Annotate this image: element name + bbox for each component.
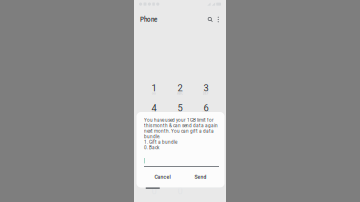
staticText: 1 bbox=[151, 82, 156, 93]
button[interactable]: More options bbox=[213, 12, 223, 26]
staticText: Cancel bbox=[154, 174, 170, 180]
button[interactable]: 1 bbox=[141, 79, 167, 99]
staticText: You have used your 1GB limit for bbox=[144, 117, 214, 123]
staticText: Send bbox=[194, 174, 206, 180]
staticText: 9 bbox=[203, 122, 208, 133]
staticText: 6 bbox=[203, 102, 208, 113]
staticText: next month. You can gift a data bbox=[144, 128, 214, 134]
staticText: 3 bbox=[203, 82, 208, 93]
staticText: 4 bbox=[151, 102, 156, 113]
button[interactable]: Search bbox=[207, 12, 213, 26]
button[interactable]: 3 bbox=[193, 79, 219, 99]
staticText: ABC bbox=[177, 92, 183, 95]
button[interactable]: 6 bbox=[193, 99, 219, 119]
staticText: 8 bbox=[177, 122, 182, 133]
staticText: this month & can send data again bbox=[144, 123, 218, 128]
staticText: * bbox=[152, 142, 156, 153]
staticText: PQRS bbox=[150, 132, 158, 135]
button[interactable]: Cancel bbox=[145, 171, 179, 183]
staticText: 0. Back bbox=[144, 145, 159, 150]
staticText: TUV bbox=[177, 132, 183, 135]
staticText: Phone bbox=[140, 16, 157, 23]
staticText: oo bbox=[152, 92, 156, 95]
button[interactable]: Send bbox=[186, 171, 214, 183]
staticText: bundle. bbox=[144, 134, 160, 139]
staticText: 2 bbox=[177, 82, 182, 93]
button[interactable]: 2 bbox=[167, 79, 193, 99]
staticText: WXYZ bbox=[201, 132, 210, 135]
staticText: 0 bbox=[151, 185, 156, 196]
staticText: 5 bbox=[177, 102, 182, 113]
staticText: 0 bbox=[177, 185, 182, 196]
button[interactable]: 4 bbox=[141, 99, 167, 119]
button[interactable]: 5 bbox=[167, 99, 193, 119]
staticText: 7 bbox=[151, 122, 156, 133]
staticText: DEF bbox=[203, 92, 209, 95]
staticText: 1. Gift a bundle bbox=[144, 139, 177, 145]
